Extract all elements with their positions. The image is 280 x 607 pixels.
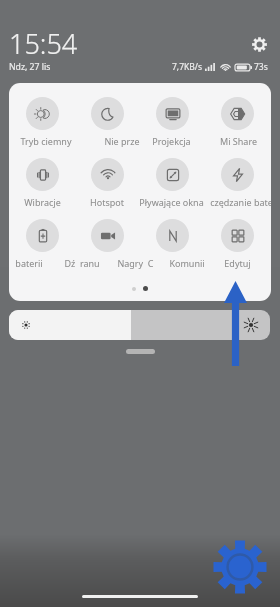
- button[interactable]: Hotspot: [91, 158, 124, 191]
- staticText: Pływające okna: [139, 196, 204, 208]
- staticText: baterii: [15, 257, 43, 269]
- button[interactable]: Dźwięk ekranu: [91, 219, 124, 252]
- button[interactable]: Oszczędzanie baterii: [26, 219, 59, 252]
- button[interactable]: Komunikacja: [221, 219, 254, 252]
- staticText: 15:54: [9, 25, 78, 62]
- staticText: Nie prze: [104, 135, 140, 147]
- button[interactable]: Nie przeszkadzać: [91, 97, 124, 130]
- button[interactable]: Nagrywanie ekranu: [156, 219, 189, 252]
- staticText: Nagry C: [117, 257, 154, 269]
- staticText: Ndz, 27 lis: [9, 61, 51, 73]
- staticText: czędzanie bate: [210, 196, 271, 208]
- button[interactable]: Pływające okna: [156, 158, 189, 191]
- button[interactable]: Mi Share: [221, 97, 254, 130]
- button[interactable]: Wibracje: [26, 158, 59, 191]
- staticText: Tryb ciemny: [20, 135, 72, 147]
- button[interactable]: [9, 310, 270, 340]
- button[interactable]: Settings: [245, 30, 273, 58]
- staticText: 73s: [254, 61, 268, 73]
- button[interactable]: Expand: [126, 349, 155, 354]
- button[interactable]: Oszczędzanie baterii: [221, 158, 254, 191]
- staticText: Komunii: [169, 257, 205, 269]
- staticText: Dź ranu: [64, 257, 100, 269]
- staticText: Edytuj: [224, 257, 251, 269]
- staticText: Hotspot: [90, 196, 124, 208]
- button[interactable]: Tryb ciemny: [26, 97, 59, 130]
- staticText: Wibracje: [24, 196, 61, 208]
- button[interactable]: Settings: [213, 540, 267, 594]
- staticText: 7,7KB/s: [172, 61, 203, 73]
- button[interactable]: Projekcja: [156, 97, 189, 130]
- staticText: Projekcja: [152, 135, 191, 147]
- staticText: Mi Share: [220, 135, 257, 147]
